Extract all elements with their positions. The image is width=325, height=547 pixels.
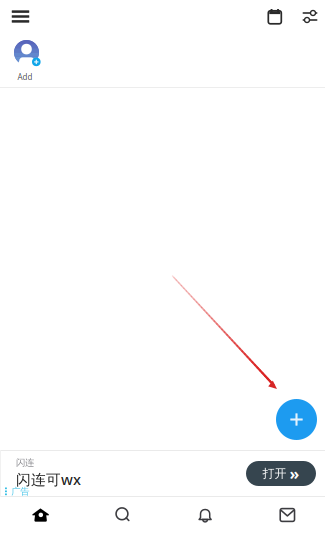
button[interactable]: Add [0, 33, 325, 87]
button[interactable]: Filters [295, 1, 325, 32]
button[interactable]: Menu [2, 1, 39, 32]
button[interactable]: Messages [244, 502, 325, 528]
staticText: 广告 [11, 486, 29, 497]
button[interactable]: 打开 [246, 461, 316, 486]
staticText: 闪连 [16, 457, 34, 468]
button[interactable]: Calendar [260, 1, 290, 32]
button[interactable]: Notifications [162, 502, 244, 528]
staticText: Add [17, 72, 32, 82]
staticText: 打开 [262, 466, 286, 481]
staticText: 闪连可wx [16, 469, 81, 489]
button[interactable]: Home [0, 502, 81, 528]
button[interactable]: Search [81, 502, 162, 528]
staticText: » [289, 463, 299, 484]
button[interactable]: Compose [276, 399, 317, 440]
